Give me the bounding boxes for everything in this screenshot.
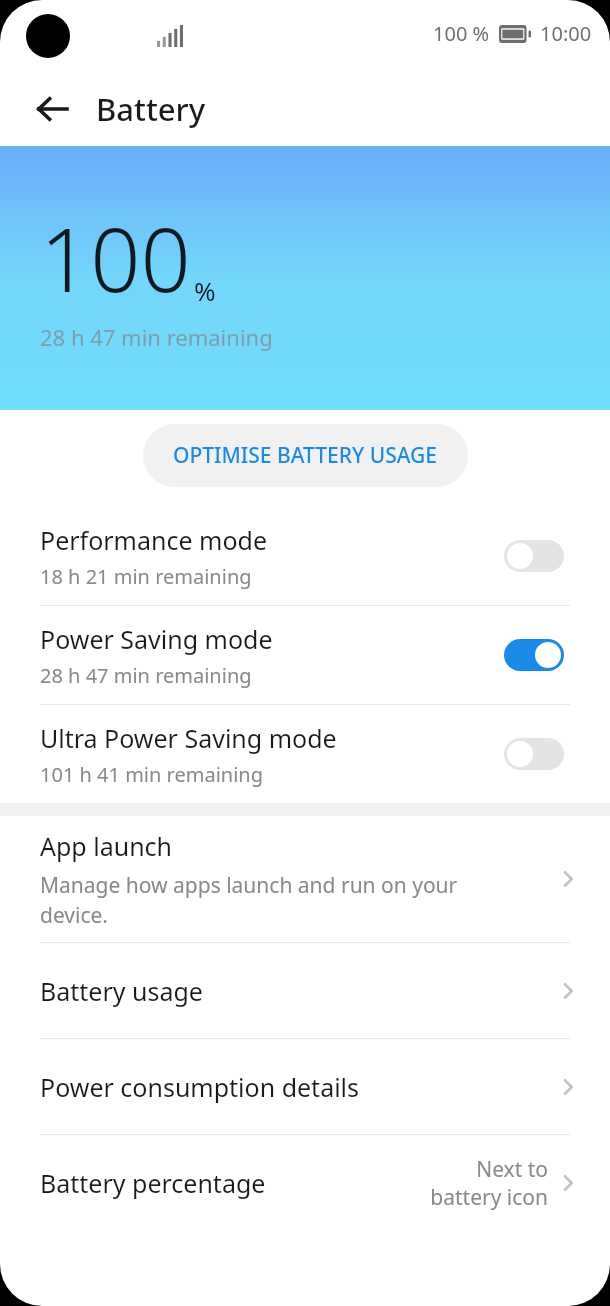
staticText: 100	[40, 198, 191, 318]
staticText: Power consumption details	[40, 1070, 360, 1104]
button[interactable]: Battery usage	[0, 943, 610, 1038]
staticText: Battery	[96, 88, 206, 130]
staticText: 28 h 47 min remaining	[40, 322, 273, 352]
staticText: Battery percentage	[40, 1166, 266, 1200]
staticText: 28 h 47 min remaining	[40, 662, 252, 689]
button[interactable]: Performance mode	[0, 507, 610, 605]
staticText: 10:00	[540, 20, 592, 47]
staticText: %	[194, 273, 216, 308]
staticText: Performance mode	[40, 523, 268, 557]
staticText: Power Saving mode	[40, 622, 273, 656]
button[interactable]: Back	[26, 83, 78, 135]
staticText: OPTIMISE BATTERY USAGE	[173, 441, 438, 470]
button[interactable]: Performance mode	[504, 540, 564, 572]
button[interactable]: Ultra Power Saving mode	[0, 705, 610, 803]
button[interactable]: Battery percentage	[0, 1135, 610, 1230]
button[interactable]: App launch	[0, 816, 610, 942]
staticText: 18 h 21 min remaining	[40, 563, 252, 590]
button[interactable]: Power Saving mode	[504, 639, 564, 671]
staticText: Ultra Power Saving mode	[40, 721, 337, 755]
staticText: App launch	[40, 829, 173, 863]
staticText: Battery usage	[40, 974, 203, 1008]
button[interactable]: Power consumption details	[0, 1039, 610, 1134]
button[interactable]: Power Saving mode	[0, 606, 610, 704]
button[interactable]: Ultra Power Saving mode	[504, 738, 564, 770]
button[interactable]: OPTIMISE BATTERY USAGE	[143, 424, 468, 487]
staticText: 101 h 41 min remaining	[40, 761, 263, 788]
staticText: Next to battery icon	[430, 1155, 548, 1211]
staticText: Manage how apps launch and run on your d…	[40, 871, 458, 929]
staticText: 100 %	[433, 20, 490, 47]
